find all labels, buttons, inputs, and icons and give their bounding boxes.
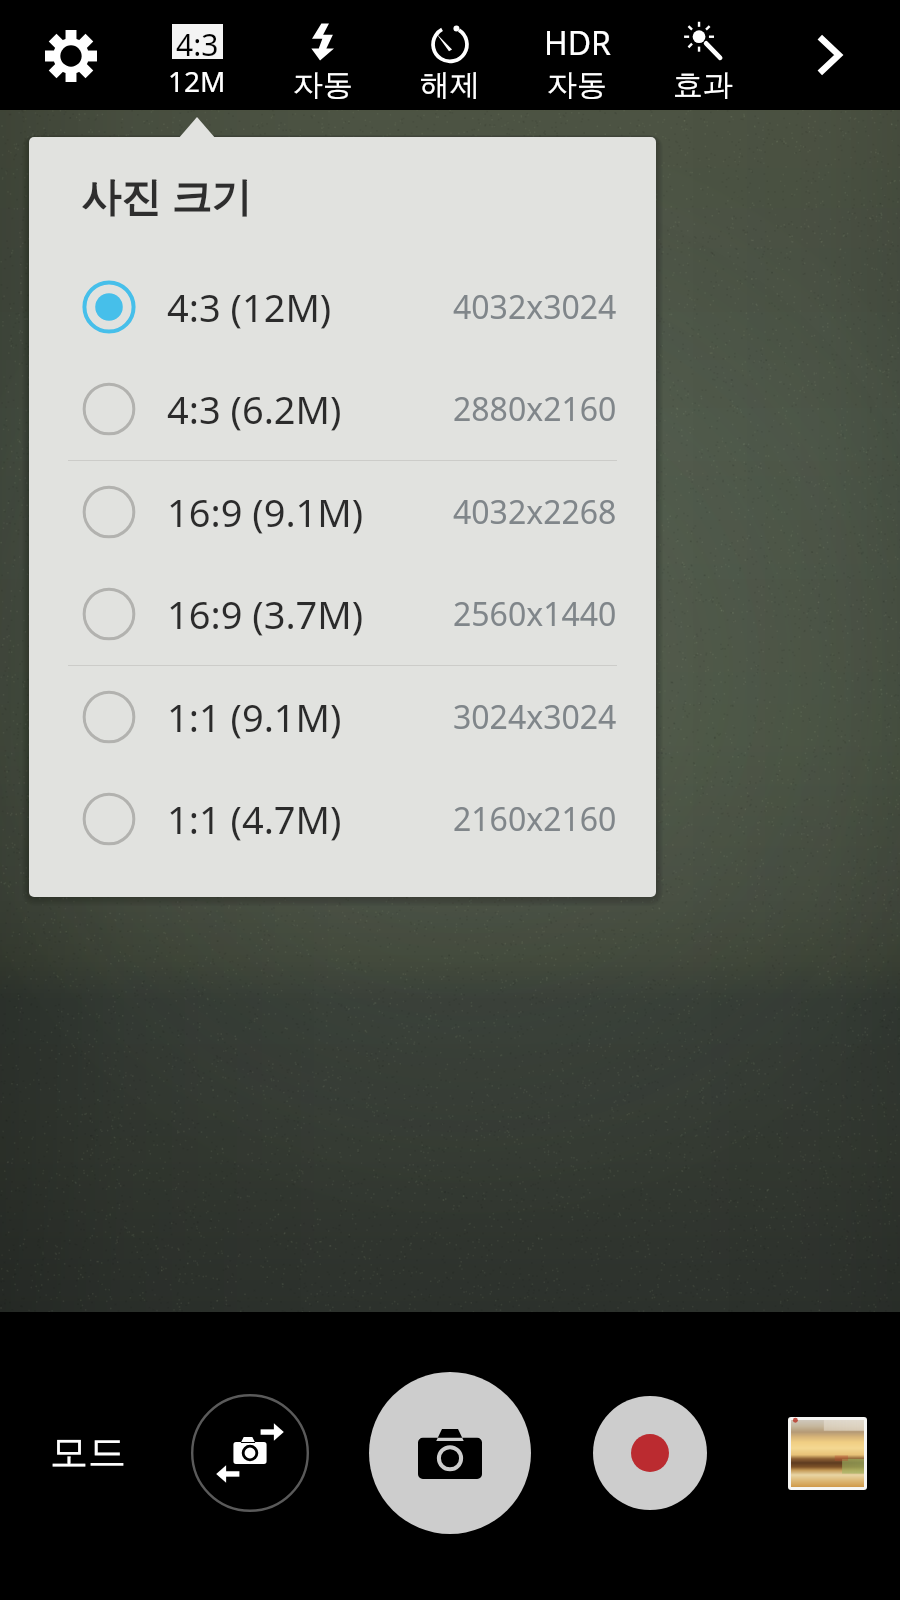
button[interactable]: HDR [521, 0, 633, 110]
staticText: 모드 [50, 1428, 126, 1476]
staticText: 1:1 (9.1M) [167, 691, 342, 743]
staticText: 16:9 (9.1M) [167, 486, 364, 538]
staticText: 3024x3024 [453, 695, 617, 739]
staticText: HDR [544, 21, 611, 65]
button[interactable]: 모드 [20, 1308, 156, 1596]
staticText: 4032x2268 [453, 490, 617, 534]
staticText: 사진 크기 [81, 168, 252, 223]
staticText: 4032x3024 [453, 285, 617, 329]
button[interactable]: Gallery [791, 1420, 864, 1487]
button[interactable]: 1:1 (9.1M) [29, 666, 656, 768]
button[interactable]: 4:3 (6.2M) [29, 358, 656, 460]
button[interactable]: More options [773, 0, 885, 110]
staticText: 1:1 (4.7M) [167, 793, 342, 845]
staticText: 4:3 (6.2M) [167, 383, 342, 435]
staticText: 2560x1440 [453, 592, 617, 636]
button[interactable]: 16:9 (9.1M) [29, 461, 656, 563]
button[interactable]: 16:9 (3.7M) [29, 563, 656, 665]
button[interactable]: Take photo [369, 1372, 531, 1534]
staticText: 2880x2160 [453, 387, 617, 431]
staticText: 해제 [420, 66, 480, 104]
staticText: 2160x2160 [453, 797, 617, 841]
button[interactable]: Timer [394, 0, 506, 110]
button[interactable]: 1:1 (4.7M) [29, 768, 656, 870]
staticText: 4:3 (12M) [167, 281, 332, 333]
button[interactable]: 4:3 [141, 0, 253, 110]
button[interactable]: Record video [593, 1396, 707, 1510]
button[interactable]: Switch camera [190, 1309, 310, 1597]
button[interactable]: Effects [647, 0, 759, 110]
staticText: 효과 [673, 66, 733, 104]
button[interactable]: Flash mode [267, 0, 379, 110]
staticText: 4:3 [176, 24, 219, 59]
button[interactable]: 4:3 (12M) [29, 256, 656, 358]
button[interactable]: Settings [15, 0, 127, 110]
staticText: 자동 [547, 66, 607, 104]
staticText: 자동 [293, 66, 353, 104]
staticText: 12M [168, 62, 226, 100]
staticText: 16:9 (3.7M) [167, 588, 364, 640]
